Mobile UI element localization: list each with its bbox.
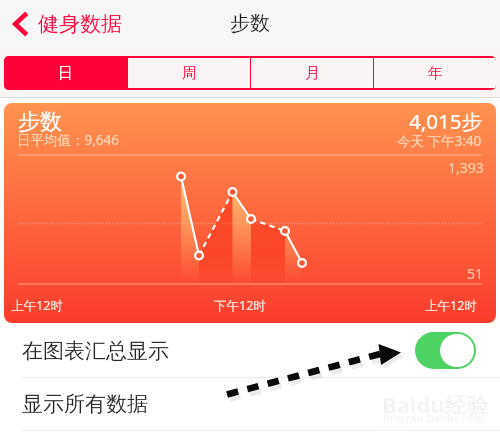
staticText: 4,015步 <box>409 107 482 135</box>
staticText: 上午12时 <box>11 297 63 314</box>
staticText: 年 <box>428 64 443 83</box>
staticText: jingyan.baidu.com <box>383 410 485 425</box>
staticText: 日平均值：9,646 <box>17 131 120 149</box>
staticText: 步数 <box>18 108 62 136</box>
staticText: 周 <box>182 64 197 83</box>
button[interactable]: 年 <box>374 58 496 88</box>
staticText: 在图表汇总显示 <box>22 338 169 364</box>
button[interactable]: 周 <box>128 58 250 88</box>
staticText: 1,393 <box>448 158 484 177</box>
button[interactable]: 在图表汇总显示 <box>0 324 500 377</box>
button[interactable]: Back to 健身数据 <box>0 7 132 41</box>
staticText: 今天 下午3:40 <box>397 132 482 150</box>
button[interactable]: 显示所有数据 <box>0 378 500 430</box>
staticText: 显示所有数据 <box>22 391 148 417</box>
staticText: 步数 <box>230 11 270 36</box>
button[interactable]: 月 <box>251 58 373 88</box>
staticText: 健身数据 <box>38 11 122 37</box>
staticText: 月 <box>305 64 320 83</box>
staticText: 下午12时 <box>214 297 266 314</box>
staticText: 51 <box>467 264 484 283</box>
staticText: 上午12时 <box>425 297 477 314</box>
staticText: Baidu经验 <box>382 389 489 419</box>
button[interactable]: Show in chart summary, on <box>415 332 476 369</box>
button[interactable]: 日 <box>4 56 127 90</box>
staticText: 日 <box>58 64 73 83</box>
